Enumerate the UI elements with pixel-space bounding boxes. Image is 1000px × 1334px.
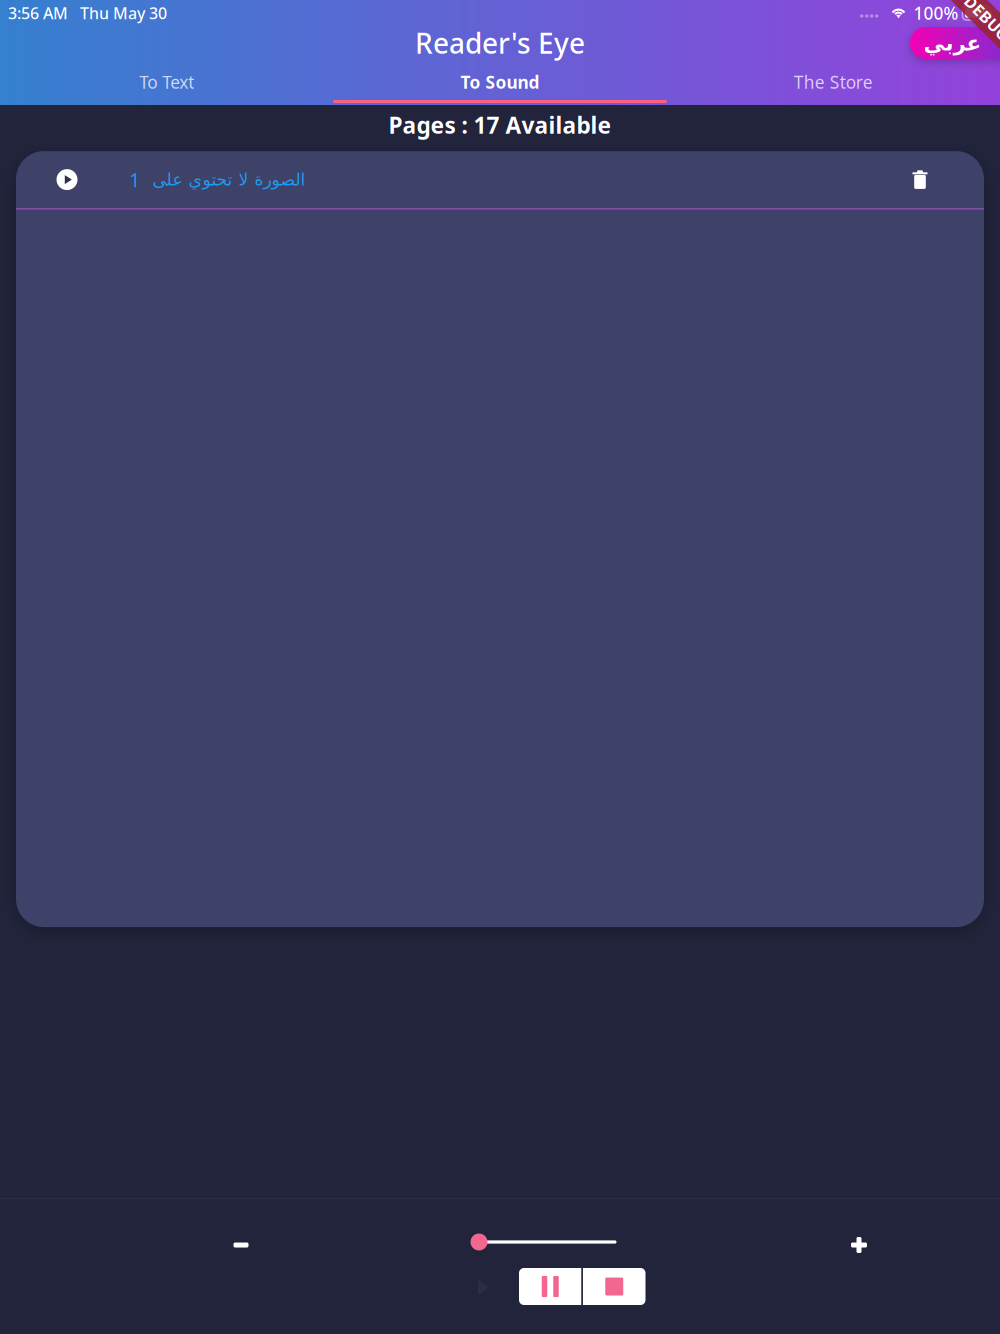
button[interactable]: Increase speed <box>830 1219 888 1271</box>
button[interactable]: The Store <box>667 64 1000 103</box>
button[interactable]: Decrease speed <box>212 1219 270 1271</box>
button[interactable]: Play <box>44 157 90 203</box>
button[interactable]: Pause <box>519 1268 581 1305</box>
staticText: 1 <box>129 166 140 193</box>
staticText: Reader's Eye <box>415 24 585 62</box>
staticText: To Text <box>139 70 194 93</box>
button[interactable]: To Sound <box>333 64 667 103</box>
staticText: عربي <box>923 31 981 55</box>
button[interactable]: Delete <box>900 160 940 200</box>
staticText: To Sound <box>460 70 539 93</box>
staticText: 100% <box>913 1 958 24</box>
staticText: Thu May 30 <box>80 2 167 24</box>
staticText: Pages : 17 Available <box>388 110 611 140</box>
button[interactable]: Stop <box>583 1268 645 1305</box>
button[interactable]: عربي <box>910 27 1000 59</box>
staticText: The Store <box>794 70 873 93</box>
staticText: 3:56 AM <box>8 2 68 24</box>
button[interactable]: To Text <box>0 64 333 103</box>
staticText: الصورة لا تحتوي على <box>152 170 305 189</box>
staticText: DEBUG <box>959 7 1000 29</box>
